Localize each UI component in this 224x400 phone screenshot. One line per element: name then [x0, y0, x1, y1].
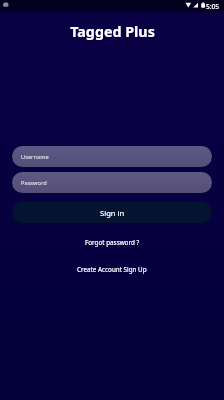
button[interactable]: Sign in [12, 202, 212, 223]
staticText: 5:05 [206, 2, 220, 11]
staticText: Username [21, 153, 49, 161]
staticText: Password [21, 179, 47, 187]
button[interactable]: Create Account Sign Up [0, 263, 224, 276]
button[interactable]: Password [12, 172, 212, 193]
button[interactable]: Forgot password ? [0, 236, 224, 249]
staticText: Forgot password ? [85, 238, 140, 247]
button[interactable]: Username [12, 146, 212, 167]
other: Status bar [0, 0, 224, 15]
staticText: Create Account Sign Up [77, 265, 147, 274]
staticText: Sign in [100, 208, 125, 218]
staticText: Tagged Plus [70, 22, 155, 40]
